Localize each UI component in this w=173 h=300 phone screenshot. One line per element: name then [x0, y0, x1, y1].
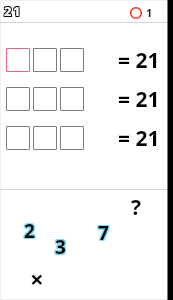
staticText: 21 [3, 2, 22, 20]
staticText: 2 [25, 218, 36, 244]
staticText: 1 [146, 5, 153, 20]
staticText: 7 [98, 220, 109, 246]
staticText: 7 [97, 221, 108, 247]
staticText: 21 [3, 1, 22, 19]
staticText: 2 [24, 217, 35, 243]
button[interactable]: 2 [24, 218, 35, 244]
staticText: 3 [56, 234, 67, 260]
staticText: 3 [55, 235, 66, 261]
staticText: 7 [97, 219, 108, 245]
staticText: 2 [24, 218, 35, 244]
staticText: = 21 [118, 124, 160, 153]
staticText: 3 [55, 233, 66, 259]
staticText: 21 [5, 3, 24, 21]
staticText: 7 [97, 220, 108, 246]
staticText: 3 [56, 235, 67, 261]
button[interactable] [6, 87, 30, 111]
staticText: 7 [98, 221, 109, 247]
staticText: 3 [54, 235, 65, 261]
staticText: 7 [99, 221, 110, 247]
staticText: 2 [24, 219, 35, 245]
button[interactable]: × [30, 262, 44, 295]
staticText: 7 [99, 219, 110, 245]
staticText: ? [131, 193, 142, 222]
button[interactable] [60, 126, 84, 150]
button[interactable]: = 21 [118, 124, 160, 153]
staticText: 3 [54, 233, 65, 259]
button[interactable] [60, 87, 84, 111]
button[interactable]: = 21 [118, 85, 160, 114]
button[interactable]: = 21 [118, 46, 160, 75]
staticText: 7 [98, 219, 109, 245]
button[interactable] [33, 48, 57, 72]
staticText: 2 [25, 217, 36, 243]
button[interactable]: ? [131, 193, 142, 222]
staticText: = 21 [118, 85, 160, 114]
staticText: 21 [3, 3, 22, 21]
button[interactable] [60, 48, 84, 72]
staticText: 21 [4, 3, 23, 21]
button[interactable]: 7 [98, 220, 109, 246]
button[interactable] [6, 126, 30, 150]
staticText: 21 [4, 2, 23, 20]
button[interactable] [6, 48, 30, 72]
staticText: 21 [5, 1, 24, 19]
staticText: 2 [25, 219, 36, 245]
staticText: 3 [54, 234, 65, 260]
staticText: 2 [23, 219, 34, 245]
staticText: 2 [23, 218, 34, 244]
button[interactable]: 3 [55, 234, 66, 260]
staticText: 21 [4, 1, 23, 19]
button[interactable] [33, 126, 57, 150]
button[interactable]: Lives [128, 5, 151, 21]
staticText: × [30, 262, 44, 295]
staticText: 2 [23, 217, 34, 243]
staticText: = 21 [118, 46, 160, 75]
staticText: 21 [5, 2, 24, 20]
staticText: 3 [55, 234, 66, 260]
button[interactable] [33, 87, 57, 111]
staticText: 7 [99, 220, 110, 246]
button[interactable]: 21 [4, 2, 23, 20]
staticText: 3 [56, 233, 67, 259]
